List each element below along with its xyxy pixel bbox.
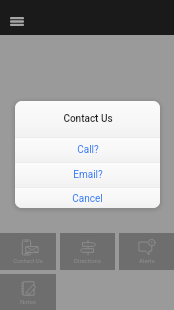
staticText: Notes [20, 298, 36, 305]
staticText: Directions [74, 257, 101, 264]
staticText: Call? [77, 144, 99, 156]
button[interactable]: Open navigation menu [3, 8, 30, 35]
staticText: Email? [73, 169, 103, 181]
button[interactable]: Alerts [119, 233, 174, 270]
button[interactable]: Call? [15, 138, 160, 162]
button[interactable]: Contact Us [0, 233, 56, 270]
staticText: Alerts [139, 257, 155, 264]
staticText: Contact Us [63, 113, 113, 125]
staticText: Cancel [72, 193, 103, 205]
button[interactable]: Email? [15, 163, 160, 187]
staticText: Contact Us [13, 257, 43, 264]
button[interactable]: Directions [60, 233, 115, 270]
button[interactable]: Cancel [15, 188, 160, 208]
button[interactable]: Notes [0, 274, 56, 310]
